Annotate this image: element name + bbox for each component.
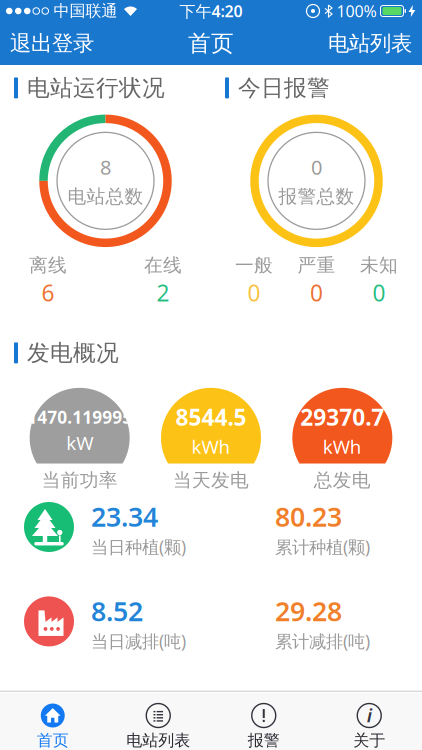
staticText: 报警总数: [278, 185, 354, 208]
button[interactable]: 电站列表: [105, 703, 211, 750]
staticText: 离线: [29, 254, 67, 277]
staticText: 0: [311, 154, 322, 180]
staticText: 电站总数: [67, 185, 143, 208]
staticText: 2: [156, 278, 169, 308]
staticText: 首页: [37, 730, 69, 750]
staticText: 0: [247, 278, 260, 308]
staticText: 报警: [248, 730, 280, 750]
staticText: 电站运行状况: [27, 74, 165, 102]
staticText: 一般: [235, 254, 273, 277]
staticText: 0: [310, 278, 323, 308]
staticText: 100%: [336, 0, 376, 22]
staticText: kWh: [323, 434, 362, 459]
button[interactable]: 电站列表: [328, 30, 412, 57]
staticText: 8: [100, 154, 111, 180]
button[interactable]: 退出登录: [10, 30, 94, 57]
staticText: 电站列表: [126, 730, 190, 750]
staticText: 6: [41, 278, 54, 308]
staticText: 当天发电: [173, 469, 249, 492]
staticText: 累计减排(吨): [275, 630, 370, 653]
staticText: 关于: [353, 730, 385, 750]
staticText: 严重: [297, 254, 335, 277]
staticText: 今日报警: [238, 74, 330, 102]
staticText: 23.34: [91, 499, 158, 534]
staticText: 中国联通: [53, 1, 117, 21]
staticText: 累计种植(颗): [275, 535, 370, 558]
staticText: kW: [66, 430, 93, 455]
button[interactable]: 首页: [0, 703, 105, 750]
staticText: 当前功率: [42, 469, 118, 492]
staticText: 29.28: [275, 593, 342, 629]
staticText: 1470.119995: [27, 405, 132, 428]
staticText: i: [367, 703, 372, 727]
staticText: 29370.7: [300, 402, 384, 432]
staticText: 电站列表: [328, 30, 412, 57]
staticText: 0: [372, 278, 385, 308]
staticText: 在线: [144, 254, 182, 277]
staticText: 8544.5: [175, 402, 246, 432]
button[interactable]: i: [316, 703, 422, 750]
staticText: 首页: [188, 30, 234, 57]
staticText: kWh: [191, 434, 230, 459]
staticText: 总发电: [314, 469, 371, 492]
staticText: 当日种植(颗): [91, 535, 186, 558]
staticText: 下午4:20: [179, 0, 242, 22]
staticText: 当日减排(吨): [91, 630, 186, 653]
staticText: 退出登录: [10, 30, 94, 57]
staticText: 80.23: [275, 499, 342, 534]
button[interactable]: 报警: [211, 703, 316, 750]
staticText: 8.52: [91, 593, 143, 629]
staticText: 发电概况: [27, 339, 119, 367]
staticText: 未知: [360, 254, 398, 277]
